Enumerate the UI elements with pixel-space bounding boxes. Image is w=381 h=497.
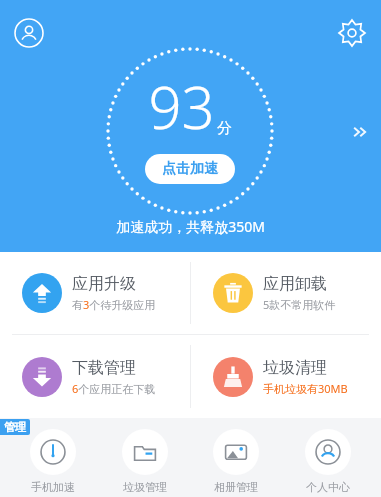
button[interactable]: 垃圾管理 (107, 427, 183, 494)
button[interactable]: Profile (12, 16, 46, 50)
staticText: 点击加速 (162, 160, 218, 178)
staticText: 个人中心 (306, 480, 350, 494)
staticText: 应用卸载 (263, 274, 327, 294)
staticText: 垃圾清理 (263, 358, 327, 378)
staticText: 相册管理 (214, 480, 258, 494)
staticText: 管理 (4, 420, 26, 434)
staticText: 5款不常用软件 (263, 297, 336, 312)
button[interactable]: 垃圾清理 (191, 335, 381, 418)
staticText: 垃圾管理 (123, 480, 167, 494)
button[interactable]: 应用卸载 (191, 252, 381, 334)
button[interactable]: 管理 (0, 419, 30, 435)
button[interactable]: 手机加速 (15, 427, 91, 494)
staticText: 分 (217, 119, 232, 138)
button[interactable]: 下载管理 (0, 335, 190, 418)
staticText: 手机加速 (31, 480, 75, 494)
button[interactable]: 个人中心 (290, 427, 366, 494)
button[interactable]: 点击加速 (145, 154, 235, 184)
button[interactable]: More (347, 118, 375, 146)
staticText: 手机垃圾有30MB (263, 381, 348, 396)
staticText: 下载管理 (72, 358, 136, 378)
button[interactable]: Settings (335, 16, 369, 50)
staticText: 应用升级 (72, 274, 136, 294)
button[interactable]: 相册管理 (198, 427, 274, 494)
staticText: 6个应用正在下载 (72, 381, 156, 396)
button[interactable]: 应用升级 (0, 252, 190, 334)
staticText: 有3个待升级应用 (72, 297, 156, 312)
staticText: 加速成功，共释放350M (116, 217, 265, 236)
staticText: 93 (148, 67, 215, 146)
